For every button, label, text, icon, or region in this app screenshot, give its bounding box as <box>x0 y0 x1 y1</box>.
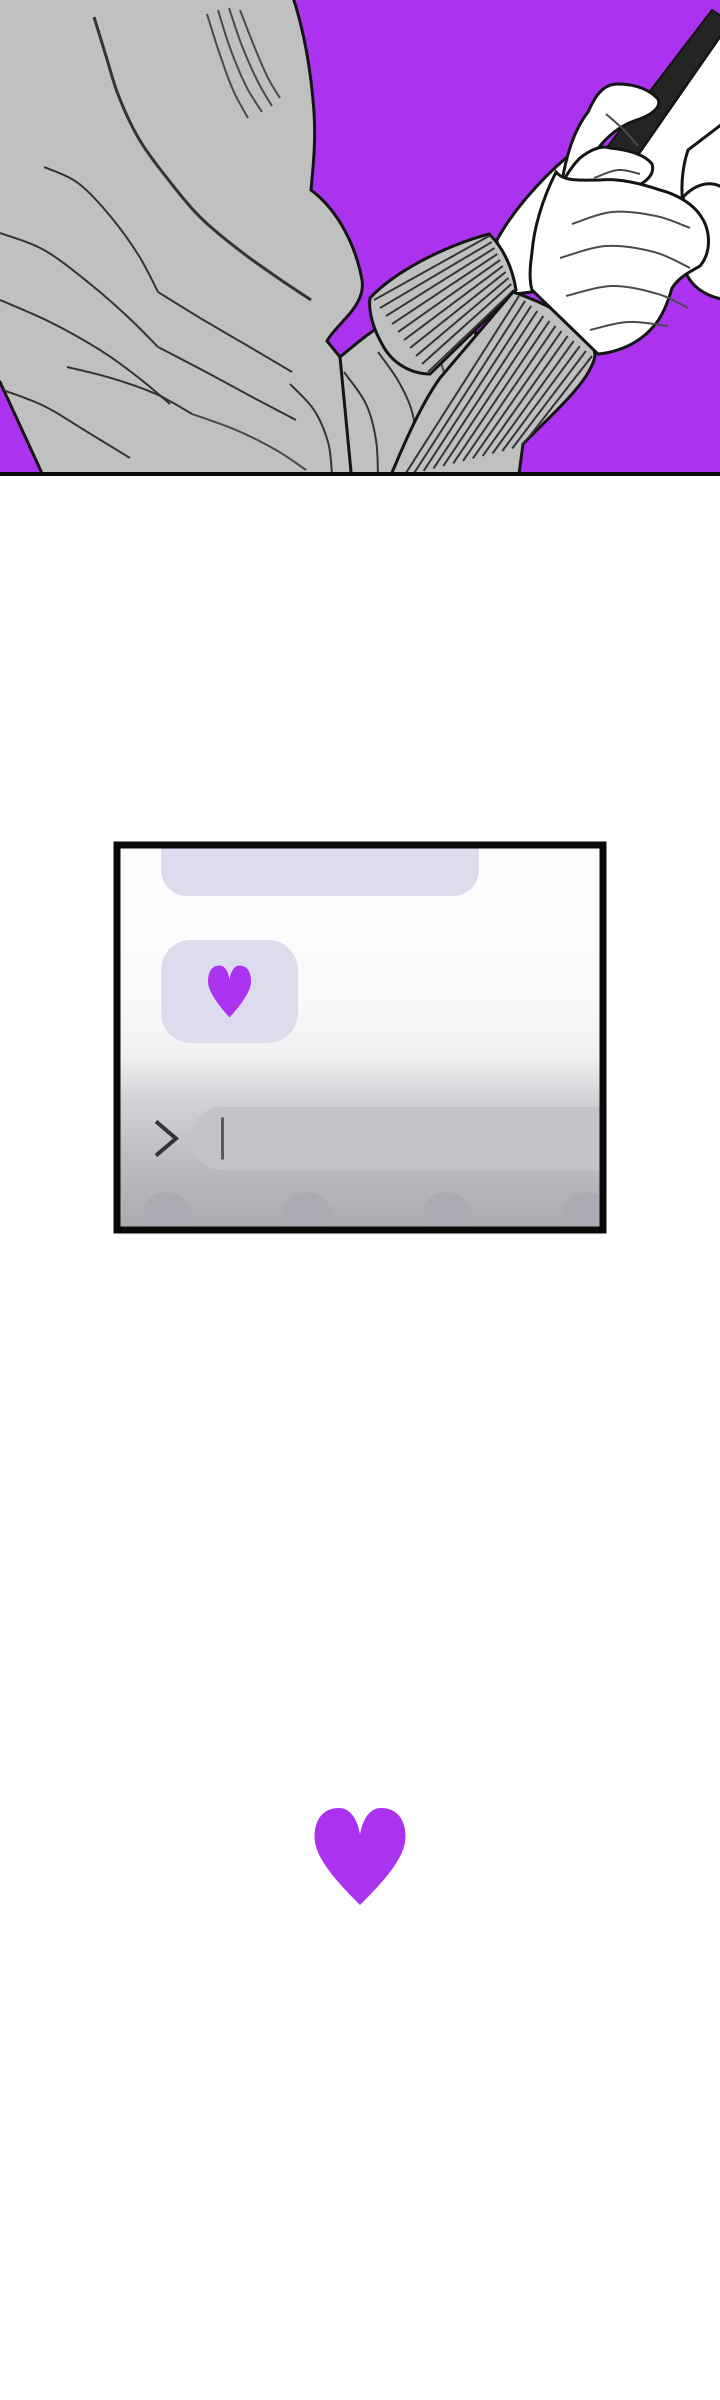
button[interactable]: Show apps <box>146 1121 186 1155</box>
button[interactable]: Heart message <box>161 940 298 1043</box>
